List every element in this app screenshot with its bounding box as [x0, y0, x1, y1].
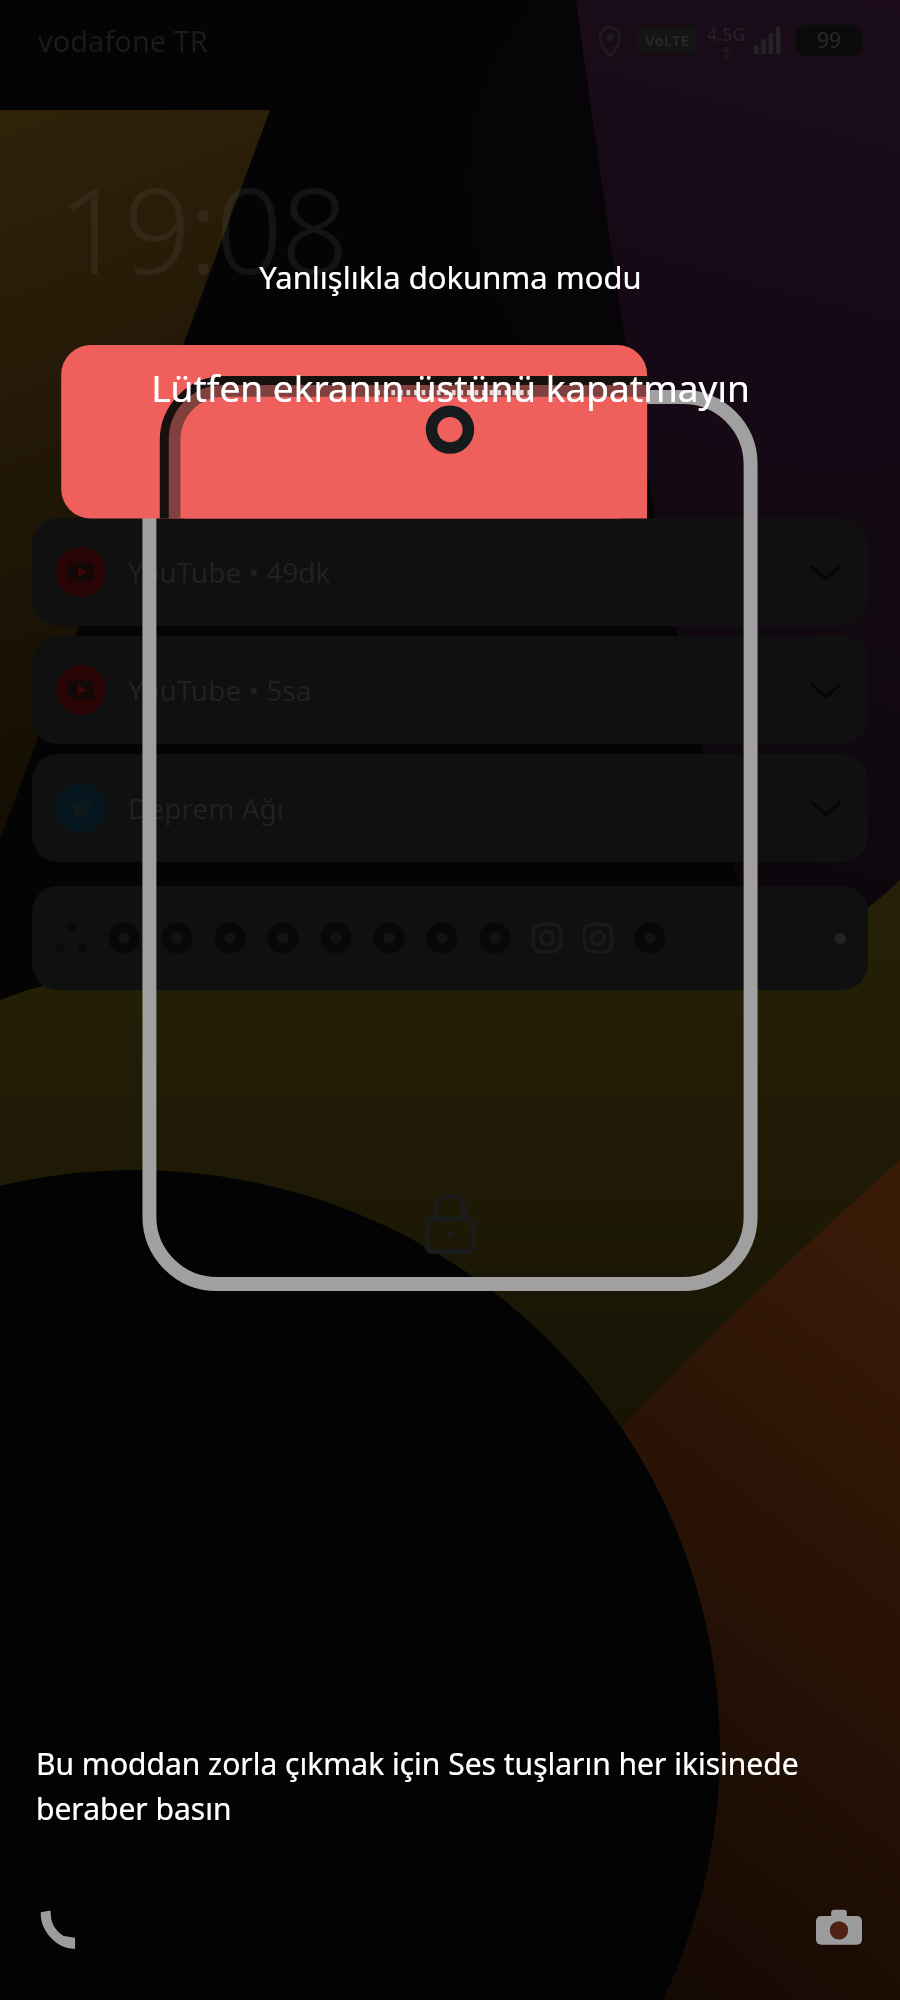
- button[interactable]: Phone: [22, 1890, 100, 1968]
- staticText: Deprem Ağı: [128, 789, 285, 827]
- button[interactable]: YouTube • 5sa: [32, 636, 868, 744]
- staticText: Yanlışlıkla dokunma modu: [259, 256, 642, 298]
- button[interactable]: YouTube • 49dk: [32, 518, 868, 626]
- staticText: 99: [817, 26, 842, 55]
- button[interactable]: [32, 886, 868, 990]
- staticText: YouTube • 49dk: [128, 553, 331, 591]
- staticText: 4.5G: [707, 22, 746, 47]
- staticText: Lütfen ekranın üstünü kapatmayın: [151, 362, 750, 412]
- staticText: VoLTE: [645, 30, 689, 50]
- button[interactable]: Camera: [800, 1890, 878, 1968]
- staticText: vodafone TR: [38, 21, 208, 60]
- staticText: YouTube • 5sa: [128, 671, 312, 709]
- staticText: Bu moddan zorla çıkmak için Ses tuşların…: [36, 1743, 836, 1828]
- staticText: 19:08: [58, 148, 347, 309]
- button[interactable]: Deprem Ağı: [32, 754, 868, 862]
